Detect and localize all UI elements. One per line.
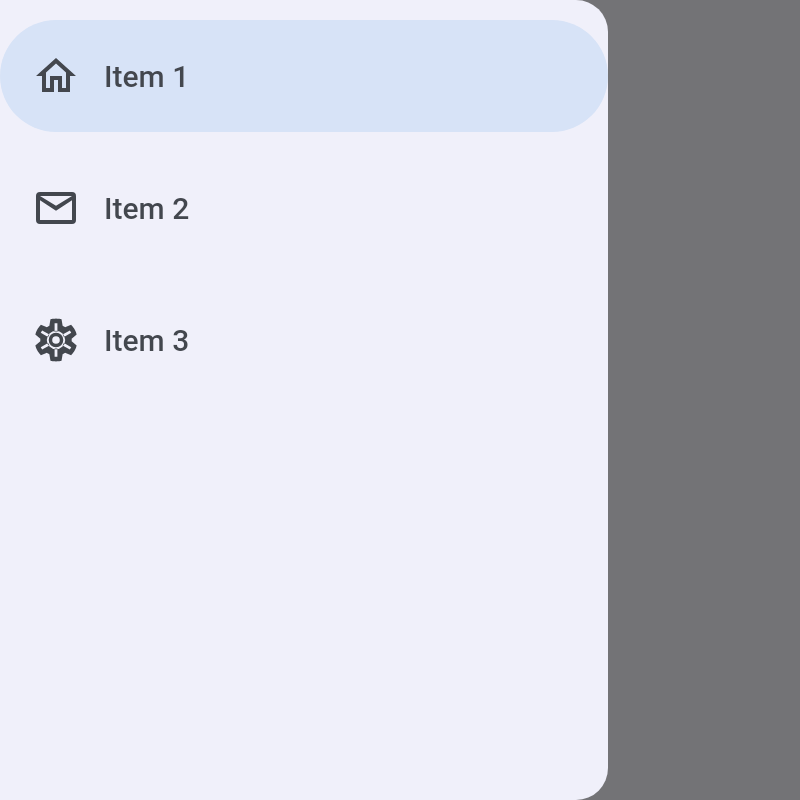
staticText: Item 3 xyxy=(104,323,190,358)
staticText: Item 1 xyxy=(104,59,190,94)
staticText: Item 2 xyxy=(104,191,190,226)
button[interactable]: Item 2 xyxy=(0,152,608,264)
button[interactable]: Item 1 xyxy=(0,20,608,132)
button[interactable]: Item 3 xyxy=(0,284,608,396)
